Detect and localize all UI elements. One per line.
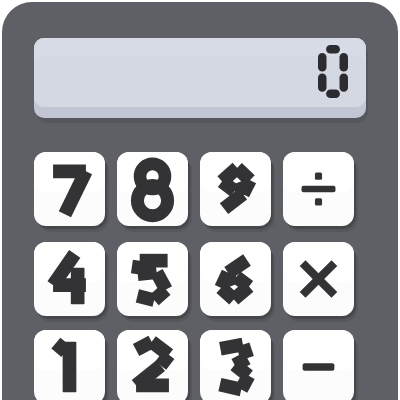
button[interactable]: 8 — [117, 152, 188, 226]
button[interactable]: Divide — [283, 152, 354, 226]
button[interactable]: 1 — [34, 330, 105, 400]
button[interactable]: 6 — [200, 242, 271, 316]
button[interactable]: 9 — [200, 152, 271, 226]
button[interactable]: 2 — [117, 330, 188, 400]
button[interactable]: 5 — [117, 242, 188, 316]
button[interactable]: Multiply — [283, 242, 354, 316]
button[interactable]: 3 — [200, 330, 271, 400]
button[interactable]: Display, 0 — [34, 38, 366, 118]
button[interactable]: 4 — [34, 242, 105, 316]
button[interactable]: 7 — [34, 152, 105, 226]
button[interactable]: Subtract — [283, 330, 354, 400]
